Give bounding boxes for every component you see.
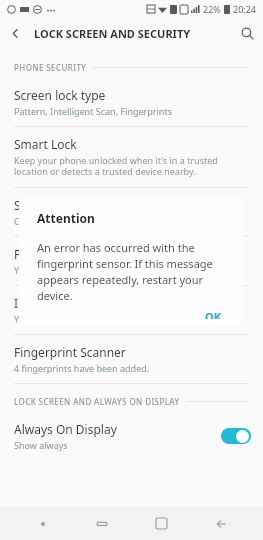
staticText: PHONE SECURITY xyxy=(14,62,87,73)
staticText: Iris Scanner xyxy=(14,295,81,311)
button[interactable]: Menu dot xyxy=(26,507,59,540)
staticText: Smart Lock xyxy=(14,136,77,152)
staticText: Always On Display xyxy=(14,421,117,437)
button[interactable]: Fingerprint Scanner xyxy=(0,335,263,383)
staticText: Attention xyxy=(37,210,95,226)
button[interactable]: Recents xyxy=(85,507,118,540)
button[interactable]: Back xyxy=(204,507,237,540)
staticText: LOCK SCREEN AND SECURITY xyxy=(34,26,191,41)
staticText: Keep your phone unlocked when it's in a … xyxy=(14,154,249,178)
staticText: Show always xyxy=(14,439,68,451)
button[interactable]: Iris Scanner xyxy=(0,286,263,334)
staticText: Screen lock type xyxy=(14,87,106,103)
staticText: Custom xyxy=(14,215,47,227)
staticText: Secure lock settings xyxy=(14,197,126,213)
staticText: 4 fingerprints have been added. xyxy=(14,362,150,374)
button[interactable]: Always On Display xyxy=(0,412,263,460)
staticText: Fingerprint Scanner xyxy=(14,344,126,360)
button[interactable]: Home xyxy=(145,507,178,540)
button[interactable]: OK xyxy=(197,303,230,325)
staticText: LOCK SCREEN AND ALWAYS ON DISPLAY xyxy=(14,396,180,407)
staticText: OK xyxy=(205,309,222,319)
staticText: 20:24 xyxy=(233,3,257,15)
staticText: An error has occurred with the fingerpri… xyxy=(37,240,230,303)
button[interactable]: Smart Lock xyxy=(0,127,263,187)
button[interactable]: Always On Display toggle xyxy=(221,428,251,444)
button[interactable]: Search xyxy=(231,18,263,48)
staticText: Your irises have been registered. xyxy=(14,313,152,325)
staticText: Face Recognition xyxy=(14,246,110,262)
button[interactable]: Face Recognition xyxy=(0,237,263,285)
staticText: 22% xyxy=(203,3,221,15)
button[interactable]: Back xyxy=(0,18,30,48)
staticText: Pattern, Intelligent Scan, Fingerprints xyxy=(14,105,172,117)
staticText: Your face has been registered. xyxy=(14,264,143,276)
button[interactable]: Secure lock settings xyxy=(0,188,263,236)
button[interactable]: Screen lock type xyxy=(0,78,263,126)
